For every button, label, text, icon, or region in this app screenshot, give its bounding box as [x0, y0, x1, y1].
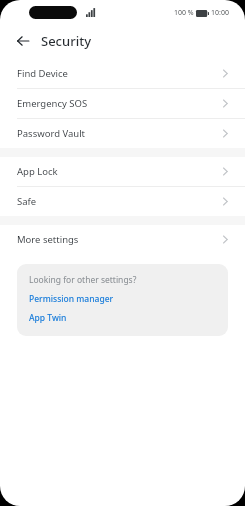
button[interactable]: Safe [0, 187, 245, 216]
staticText: Find Device [17, 67, 222, 80]
staticText: 100 % [174, 8, 194, 18]
button[interactable]: Permission manager [29, 293, 114, 305]
button[interactable]: App Twin [29, 312, 67, 324]
button[interactable]: Password Vault [0, 119, 245, 148]
staticText: More settings [17, 233, 222, 246]
staticText: App Twin [29, 312, 67, 324]
staticText: 10:00 [211, 8, 229, 18]
button[interactable]: Emergency SOS [0, 89, 245, 118]
staticText: Password Vault [17, 127, 222, 140]
button[interactable]: Find Device [0, 59, 245, 88]
staticText: Security [41, 32, 91, 50]
button[interactable]: More settings [0, 225, 245, 254]
button[interactable]: Back [9, 27, 36, 54]
staticText: Safe [17, 195, 222, 208]
button[interactable]: App Lock [0, 157, 245, 186]
staticText: Emergency SOS [17, 97, 222, 110]
staticText: App Lock [17, 165, 222, 178]
staticText: Permission manager [29, 293, 114, 305]
staticText: Looking for other settings? [29, 274, 137, 286]
